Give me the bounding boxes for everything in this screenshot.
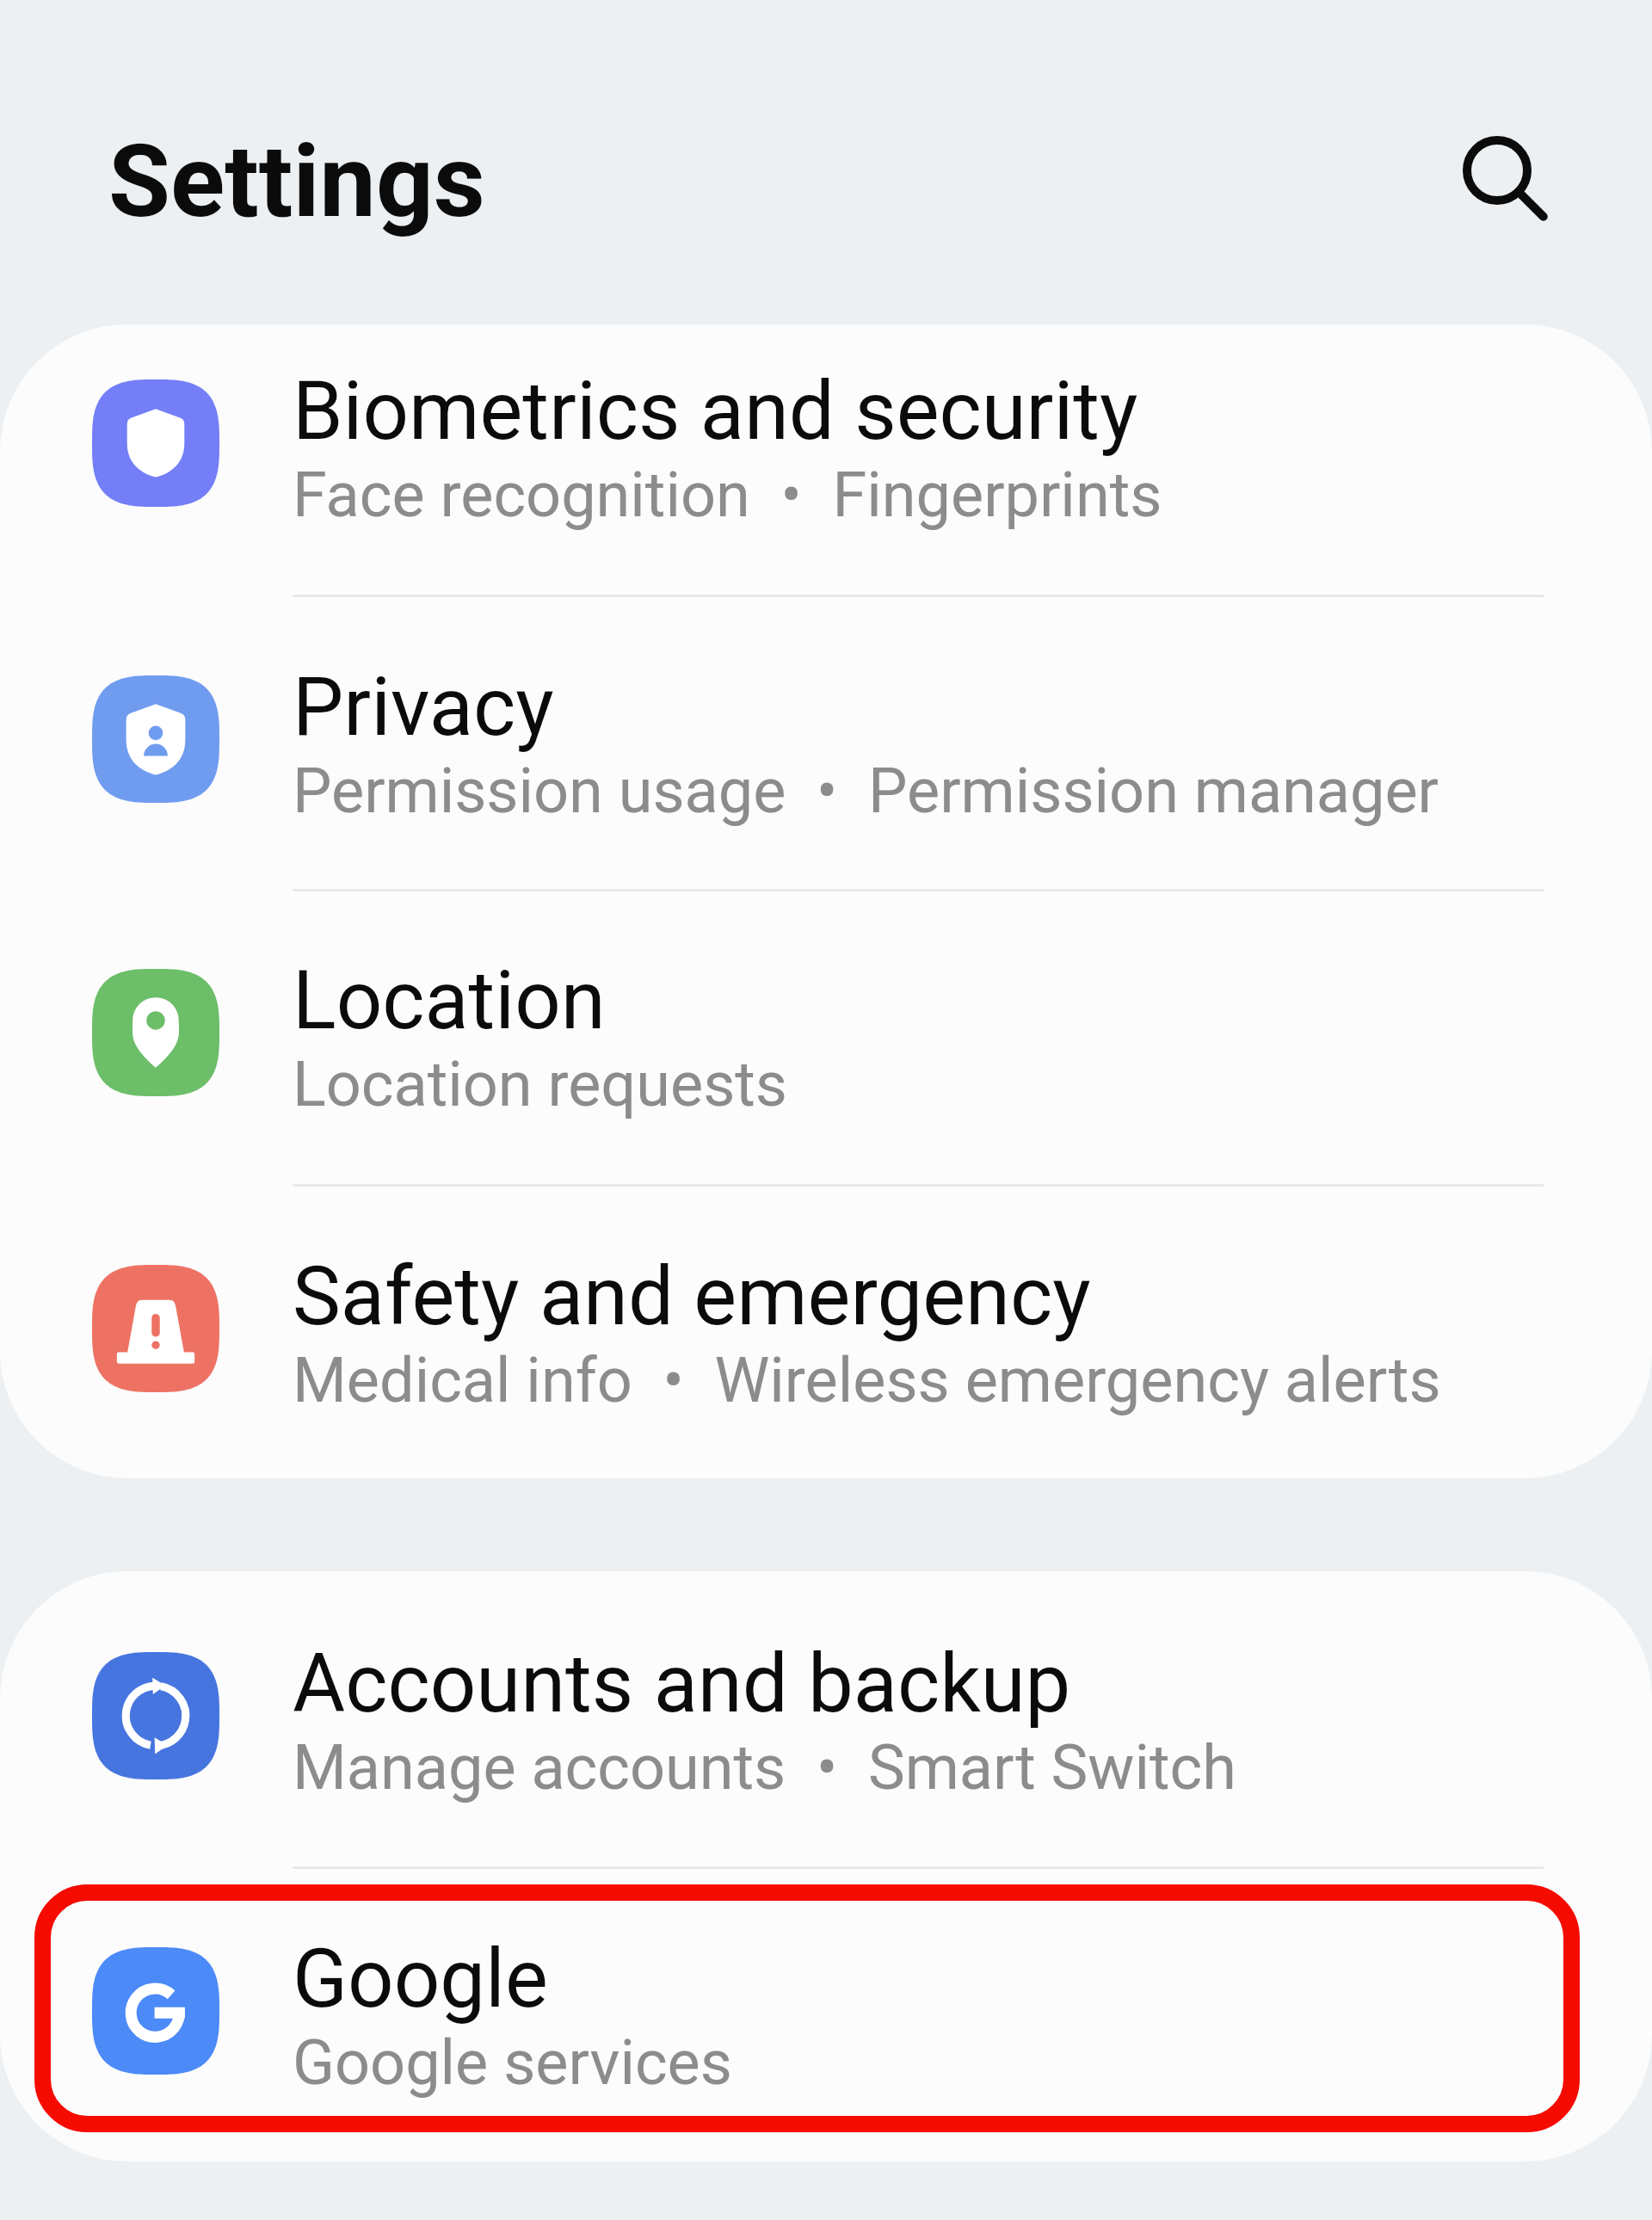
staticText: Manage accounts • Smart Switch [293,1731,1236,1804]
button[interactable] [0,324,1652,595]
button[interactable] [0,1571,1652,1866]
staticText: Location requests [293,1048,788,1120]
staticText: Google services [293,2026,732,2099]
button[interactable]: Settings [86,95,568,267]
button[interactable] [0,1866,1652,2161]
staticText: Settings [108,122,485,240]
staticText: Biometrics and security [293,364,1138,459]
staticText: Permission usage • Permission manager [293,755,1439,827]
staticText: Location [293,953,606,1048]
staticText: Privacy [293,660,554,755]
staticText: Safety and emergency [293,1249,1091,1344]
button[interactable] [0,595,1652,889]
button[interactable]: Search [1420,93,1575,248]
staticText: Accounts and backup [293,1637,1071,1731]
staticText: Medical info • Wireless emergency alerts [293,1344,1441,1416]
button[interactable] [0,1184,1652,1478]
staticText: Face recognition • Fingerprints [293,459,1162,531]
button[interactable] [0,889,1652,1183]
staticText: Google [293,1932,548,2026]
